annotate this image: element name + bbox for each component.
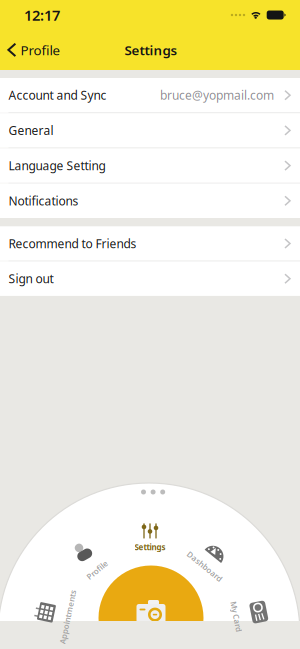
staticText: Notifications	[8, 193, 78, 209]
button[interactable]: General	[0, 113, 300, 148]
staticText: Profile	[85, 565, 110, 575]
staticText: Appointments	[40, 611, 95, 622]
staticText: Recommend to Friends	[8, 235, 136, 251]
button[interactable]: Recommend to Friends	[0, 226, 300, 261]
staticText: Dashboard	[183, 561, 226, 572]
button[interactable]: Notifications	[0, 184, 300, 218]
staticText: Sign out	[8, 271, 53, 287]
button[interactable]: Language Setting	[0, 148, 300, 183]
button[interactable]: Sign out	[0, 261, 300, 296]
button[interactable]: Camera	[98, 565, 203, 649]
button[interactable]: Settings	[120, 521, 180, 555]
staticText: My Card	[221, 611, 252, 622]
button[interactable]: Account and Sync	[0, 78, 300, 112]
button[interactable]: Profile	[66, 535, 100, 569]
staticText: Settings	[134, 542, 165, 552]
staticText: Account and Sync	[8, 87, 106, 103]
staticText: Settings	[124, 41, 177, 59]
button[interactable]: Profile	[0, 37, 60, 63]
staticText: Profile	[20, 41, 60, 59]
button[interactable]: Dashboard	[199, 535, 233, 569]
staticText: Language Setting	[8, 158, 105, 173]
staticText: General	[8, 122, 53, 138]
button[interactable]: Appointments	[28, 595, 62, 629]
staticText: 12:17	[24, 5, 60, 25]
staticText: bruce@yopmail.com	[160, 87, 274, 103]
button[interactable]: My Card	[242, 595, 276, 629]
